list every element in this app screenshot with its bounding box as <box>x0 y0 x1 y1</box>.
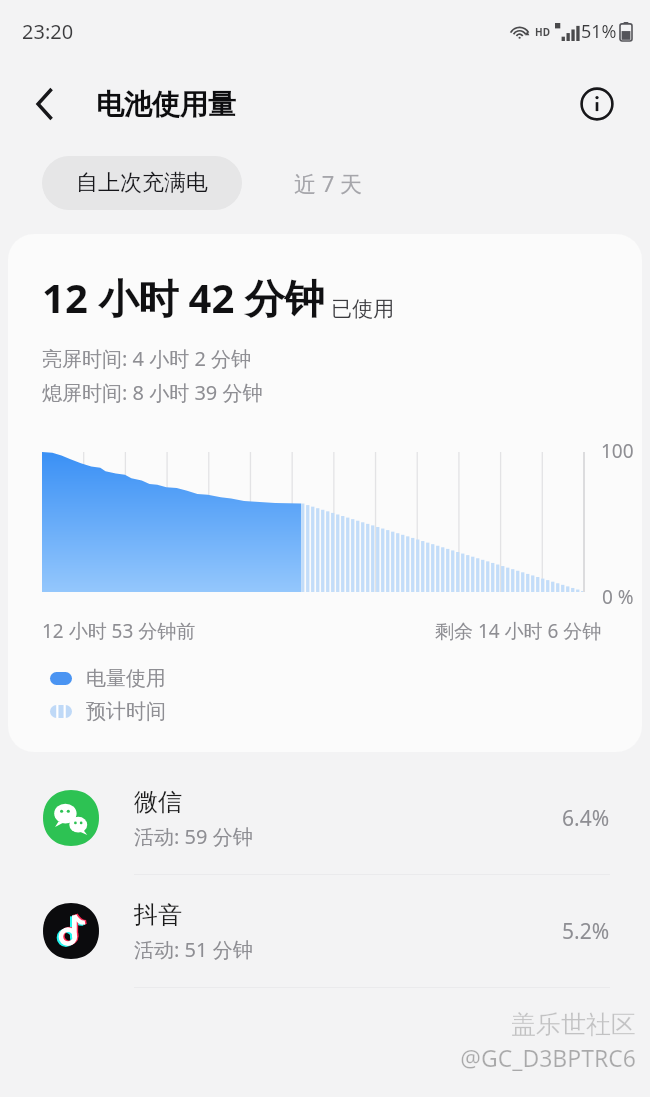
staticText: 近 7 天 <box>294 168 363 198</box>
button[interactable]: 自上次充满电 <box>42 156 242 210</box>
staticText: 电池使用量 <box>96 87 236 122</box>
staticText: 微信 <box>134 787 182 817</box>
staticText: 电量使用 <box>86 666 166 691</box>
staticText: @GC_D3BPTRC6 <box>460 1042 636 1073</box>
button[interactable]: 抖音 <box>0 875 650 987</box>
staticText: 活动: 59 分钟 <box>134 823 253 850</box>
staticText: 抖音 <box>134 900 182 930</box>
staticText: 6.4% <box>562 804 610 833</box>
staticText: 51% <box>581 19 617 44</box>
staticText: 5.2% <box>562 917 610 946</box>
button[interactable]: 近 7 天 <box>242 155 415 211</box>
button[interactable]: Info <box>576 83 618 125</box>
staticText: 熄屏时间: 8 小时 39 分钟 <box>42 379 263 406</box>
button[interactable]: 微信 <box>0 762 650 874</box>
button[interactable]: Back <box>24 82 68 126</box>
staticText: 已使用 <box>331 296 394 322</box>
staticText: 100 <box>601 438 634 464</box>
staticText: HD <box>535 25 550 39</box>
staticText: 12 小时 53 分钟前 <box>42 618 196 644</box>
staticText: 盖乐世社区 <box>511 1009 636 1040</box>
staticText: 亮屏时间: 4 小时 2 分钟 <box>42 345 252 372</box>
staticText: 自上次充满电 <box>76 169 208 197</box>
staticText: 活动: 51 分钟 <box>134 936 253 963</box>
staticText: 12 小时 42 分钟 <box>42 270 325 325</box>
staticText: 剩余 14 小时 6 分钟 <box>435 618 602 644</box>
staticText: 预计时间 <box>86 699 166 724</box>
staticText: 0 % <box>602 584 634 610</box>
staticText: 23:20 <box>22 18 74 45</box>
